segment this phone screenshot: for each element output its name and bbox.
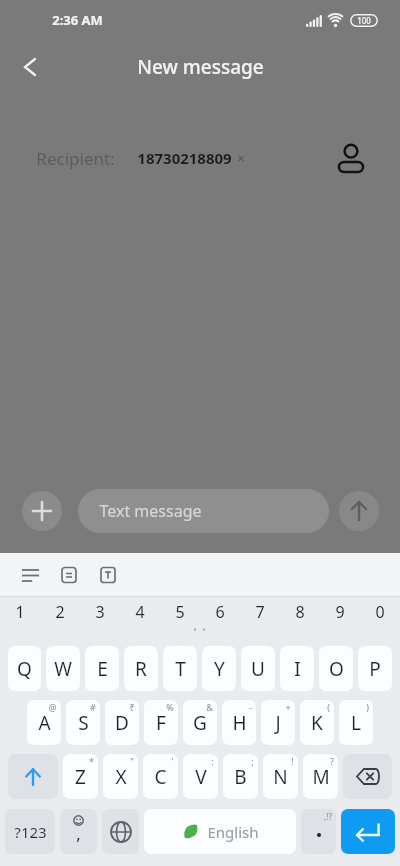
button[interactable] [343,754,392,799]
button[interactable]: 3 [80,597,120,646]
staticText: D [115,710,129,736]
button[interactable]: E [85,646,119,691]
button[interactable]: W [46,646,80,691]
button[interactable]: S [66,700,100,745]
button[interactable]: B [223,754,258,799]
button[interactable]: 0 [360,597,400,646]
staticText: 0 [375,601,385,623]
staticText: C [154,764,167,790]
staticText: # [90,701,96,713]
staticText: @ [48,701,57,713]
staticText: ?123 [14,822,47,842]
button[interactable]: L [339,700,373,745]
button[interactable]: N [263,754,298,799]
button[interactable] [99,566,117,584]
staticText: × [237,149,245,167]
button[interactable]: ?123 [5,809,55,854]
staticText: Text message [99,500,202,522]
staticText: T [175,656,186,682]
staticText: I [294,656,301,682]
button[interactable]: U [241,646,275,691]
button[interactable]: A [27,700,61,745]
button[interactable]: J [261,700,295,745]
staticText: O [329,656,344,682]
staticText: Recipient: [36,147,115,170]
staticText: : [211,755,214,767]
button[interactable]: T [163,646,197,691]
button[interactable]: H [222,700,256,745]
staticText: Y [214,656,225,682]
staticText: ₹ [129,701,135,713]
button[interactable]: P [358,646,392,691]
button[interactable]: 4 [120,597,160,646]
staticText: M [312,764,330,790]
staticText: N [273,764,288,790]
button[interactable]: Z [63,754,98,799]
button[interactable]: V [183,754,218,799]
staticText: J [275,710,281,736]
button[interactable] [341,809,395,854]
staticText: % [166,701,174,713]
button[interactable]: Q [8,646,41,691]
staticText: A [38,710,51,736]
staticText: * [89,755,94,767]
button[interactable]: G [183,700,217,745]
staticText: 18730218809 [137,148,232,168]
button[interactable]: Text message [78,489,329,533]
button[interactable]: 7 [240,597,280,646]
staticText: 100 [357,15,371,26]
staticText: ' [171,755,174,767]
button[interactable] [12,49,48,85]
button[interactable]: M [303,754,338,799]
staticText: & [206,701,213,713]
button[interactable]: 5 [160,597,200,646]
button[interactable]: Y [202,646,236,691]
staticText: ; [251,755,254,767]
staticText: New message [137,54,264,80]
button[interactable]: X [103,754,138,799]
button[interactable] [8,754,58,799]
button[interactable]: 6 [200,597,240,646]
button[interactable] [102,809,139,854]
button[interactable]: R [124,646,158,691]
staticText: + [285,701,291,713]
staticText: ,!? [324,811,332,822]
staticText: ? [330,755,334,767]
button[interactable]: 9 [320,597,360,646]
staticText: F [156,710,166,736]
button[interactable]: 1 [0,597,40,646]
button[interactable] [60,566,78,584]
button[interactable]: 8 [280,597,320,646]
button[interactable]: 2 [40,597,80,646]
staticText: K [311,710,323,736]
staticText: 1 [15,601,25,623]
button[interactable]: F [144,700,178,745]
button[interactable]: , [60,809,97,854]
button[interactable]: 18730218809 [131,144,251,172]
staticText: 4 [135,601,145,623]
staticText: R [135,656,147,682]
button[interactable]: D [105,700,139,745]
button[interactable]: ,!? [301,809,336,854]
staticText: ( [327,701,330,713]
button[interactable]: I [280,646,314,691]
staticText: V [195,764,207,790]
button[interactable]: C [143,754,178,799]
button[interactable]: English [144,809,296,854]
staticText: S [78,710,89,736]
staticText: 7 [255,601,265,623]
button[interactable] [339,491,379,531]
staticText: ) [366,701,369,713]
button[interactable]: O [319,646,353,691]
staticText: 8 [295,601,305,623]
button[interactable] [22,491,62,531]
staticText: - [249,701,252,713]
staticText: , [76,822,81,845]
button[interactable] [21,566,39,584]
staticText: 9 [335,601,345,623]
staticText: U [251,656,265,682]
button[interactable] [334,141,368,175]
staticText: English [207,822,259,842]
staticText: 3 [95,601,105,623]
button[interactable]: K [300,700,334,745]
